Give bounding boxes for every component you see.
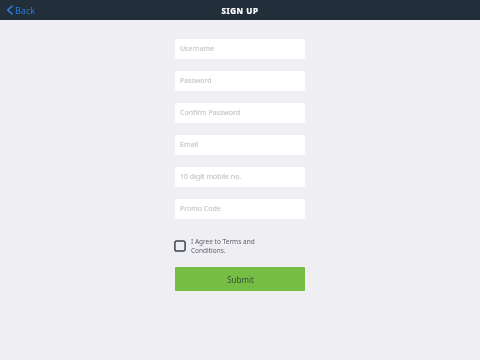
button[interactable]: Back	[5, 2, 38, 18]
staticText: I Agree to Terms and Conditions.	[191, 237, 255, 255]
staticText: Email	[180, 140, 198, 150]
other: I agree to terms and conditions checkbox	[174, 240, 186, 252]
button[interactable]: Password	[175, 71, 305, 91]
button[interactable]: Confirm Password	[175, 103, 305, 123]
staticText: Back	[15, 4, 36, 16]
staticText: Username	[180, 44, 215, 54]
button[interactable]: Promo Code	[175, 199, 305, 219]
staticText: SIGN UP	[221, 5, 259, 16]
staticText: Confirm Password	[180, 108, 241, 118]
staticText: 10 digit mobile no.	[180, 172, 242, 182]
button[interactable]: Username	[175, 39, 305, 59]
staticText: Password	[180, 76, 212, 86]
button[interactable]: Email	[175, 135, 305, 155]
button[interactable]: 10 digit mobile no.	[175, 167, 305, 187]
button[interactable]: I agree to terms and conditions checkbox	[174, 236, 305, 256]
staticText: Promo Code	[180, 204, 221, 214]
staticText: Submit	[227, 274, 254, 285]
button[interactable]: Submit	[175, 267, 305, 291]
